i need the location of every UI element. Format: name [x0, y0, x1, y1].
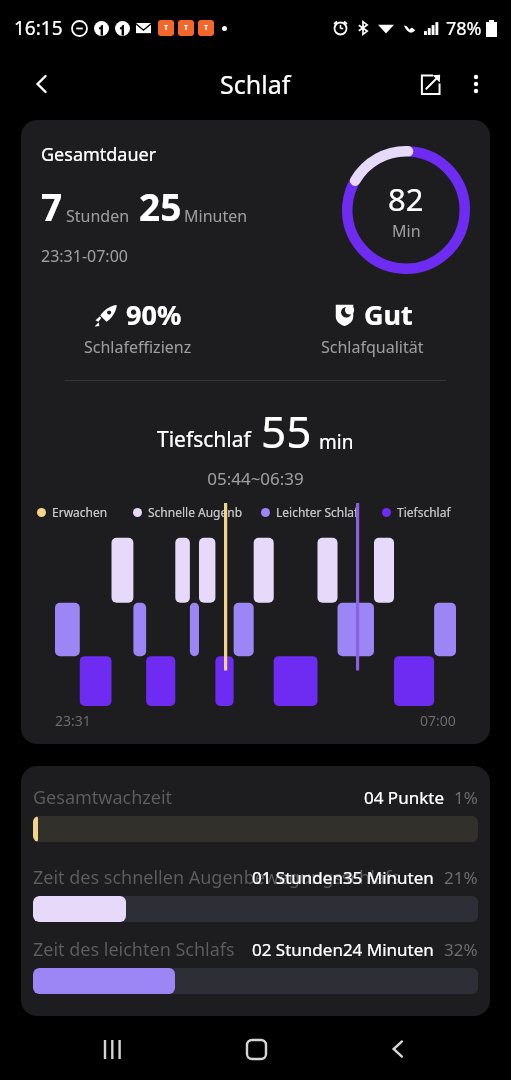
staticText: 90%	[126, 296, 182, 333]
staticText: Min	[392, 220, 421, 242]
button[interactable]: Gut	[255, 296, 490, 358]
staticText: Schnelle Augenb	[148, 504, 243, 520]
staticText: 23:31-07:00	[41, 245, 128, 267]
staticText: T	[164, 23, 169, 33]
staticText: T	[184, 23, 189, 33]
staticText: 04 Punkte	[364, 786, 444, 809]
button[interactable]: Back	[369, 1020, 427, 1078]
button[interactable]: Home	[227, 1020, 285, 1078]
staticText: Minuten	[184, 205, 248, 227]
staticText: 05:44~06:39	[21, 467, 490, 490]
staticText: 02 Stunden24 Minuten	[252, 938, 434, 961]
button[interactable]: Zeit des leichten Schlafs	[33, 936, 478, 994]
staticText: Leichter Schlaf	[276, 504, 359, 520]
staticText: Schlafqualität	[321, 336, 424, 358]
staticText: Zeit des leichten Schlafs	[33, 937, 235, 962]
staticText: Stunden	[66, 205, 130, 227]
staticText: 25	[139, 181, 182, 231]
staticText: 32%	[444, 938, 478, 961]
staticText: Tiefschlaf	[157, 425, 251, 454]
staticText: Erwachen	[52, 504, 108, 520]
staticText: Gut	[364, 296, 413, 333]
button[interactable]: Gesamtdauer	[21, 120, 490, 744]
staticText: Tiefschlaf	[397, 504, 451, 520]
button[interactable]: Back	[20, 62, 64, 106]
staticText: 16:15	[14, 15, 63, 41]
staticText: Gesamtwachzeit	[33, 785, 173, 810]
button[interactable]: Recent apps	[84, 1020, 142, 1078]
staticText: min	[319, 429, 354, 455]
staticText: 01 Stunden35 Minuten	[252, 866, 434, 889]
button[interactable]: More options	[453, 61, 499, 107]
staticText: Schlaf	[220, 67, 291, 101]
staticText: 82	[388, 178, 424, 220]
button[interactable]: Gesamtwachzeit	[33, 784, 478, 842]
staticText: 7	[41, 181, 63, 231]
staticText: 23:31	[55, 711, 91, 730]
staticText: 21%	[444, 866, 478, 889]
staticText: Gesamtdauer	[41, 142, 157, 167]
staticText: 07:00	[420, 711, 456, 730]
button[interactable]: 90%	[21, 296, 255, 358]
staticText: T	[204, 23, 209, 33]
button[interactable]: Share	[407, 61, 453, 107]
staticText: 1%	[454, 786, 478, 809]
staticText: 55	[261, 401, 312, 461]
button[interactable]: Gesamtwachzeit	[21, 766, 490, 1016]
staticText: Schlafeffizienz	[84, 336, 192, 358]
staticText: Zeit des schnellen Augenbewegungsschlafs	[33, 865, 400, 890]
staticText: 78%	[446, 16, 482, 41]
button[interactable]: Zeit des schnellen Augenbewegungsschlafs	[33, 864, 478, 922]
